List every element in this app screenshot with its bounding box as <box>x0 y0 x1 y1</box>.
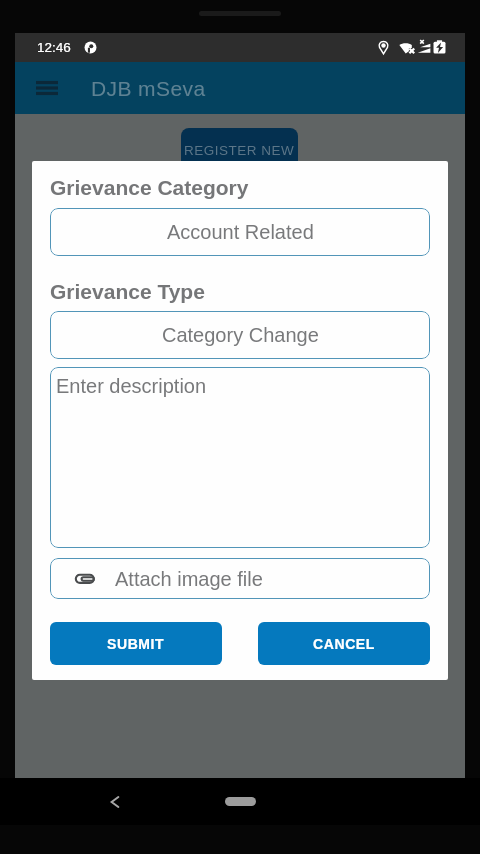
button[interactable]: Open navigation menu <box>24 62 70 114</box>
staticText: Account Related <box>167 221 314 243</box>
staticText: Category Change <box>162 324 319 346</box>
button[interactable]: Account Related <box>50 208 430 256</box>
staticText: Enter description <box>56 375 207 397</box>
button[interactable]: Attach image file <box>50 558 430 599</box>
staticText: Grievance Type <box>50 280 205 303</box>
button[interactable]: Home <box>225 797 256 806</box>
button[interactable]: REGISTER NEW <box>181 128 298 172</box>
button[interactable]: SUBMIT <box>50 622 222 665</box>
button[interactable]: Enter description <box>50 367 430 548</box>
button[interactable]: CANCEL <box>258 622 430 665</box>
staticText: Attach image file <box>115 568 263 590</box>
staticText: CANCEL <box>313 636 375 652</box>
staticText: DJB mSeva <box>91 77 206 100</box>
staticText: Grievance Category <box>50 176 249 199</box>
staticText: SUBMIT <box>107 636 165 652</box>
button[interactable]: Back <box>99 778 131 825</box>
staticText: 12:46 <box>37 40 71 55</box>
button[interactable]: Category Change <box>50 311 430 359</box>
staticText: REGISTER NEW <box>184 143 295 158</box>
